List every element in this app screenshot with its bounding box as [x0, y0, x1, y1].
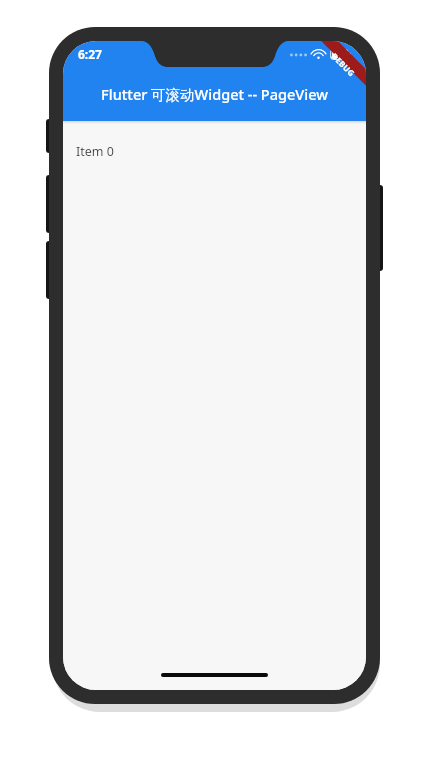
- button[interactable]: Item 0: [63, 124, 366, 690]
- staticText: Flutter 可滚动Widget -- PageView: [81, 84, 348, 104]
- staticText: 6:27: [78, 46, 102, 62]
- staticText: DEBUG: [329, 50, 358, 79]
- staticText: Item 0: [76, 143, 114, 160]
- other: Home indicator: [161, 673, 268, 677]
